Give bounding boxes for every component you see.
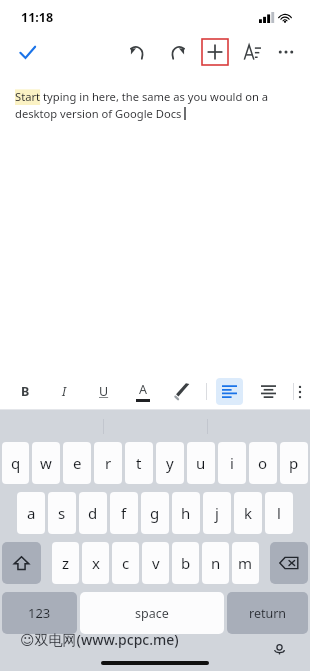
staticText: ☺双电网(www.pcpc.me) [20,630,179,649]
button[interactable]: Redo [162,36,194,68]
staticText: g [150,503,160,523]
button[interactable]: Format [236,36,268,68]
button[interactable]: v [142,542,169,584]
staticText: j [215,503,219,523]
button[interactable]: m [232,542,259,584]
button[interactable]: d [79,492,107,534]
staticText: l [277,503,281,523]
staticText: k [244,503,253,523]
staticText: 11:18 [21,9,54,26]
staticText: B [21,383,30,400]
button[interactable]: a [17,492,45,534]
button[interactable]: u [187,442,215,484]
staticText: I [62,383,67,400]
button[interactable]: Text color [129,378,156,405]
button[interactable]: Insert [202,39,228,65]
staticText: z [62,553,70,573]
button[interactable]: k [234,492,262,534]
button[interactable]: q [2,442,29,484]
staticText: m [238,553,253,573]
button[interactable]: t [125,442,153,484]
button[interactable]: Italic [51,378,78,405]
staticText: p [289,453,299,473]
button[interactable]: z [52,542,79,584]
button[interactable]: p [280,442,308,484]
staticText: x [92,553,100,573]
button[interactable]: c [112,542,139,584]
staticText: A [139,381,147,398]
button[interactable]: Highlight [168,378,195,405]
button[interactable]: space [80,592,224,634]
staticText: r [105,453,112,473]
staticText: y [166,453,174,473]
staticText: 123 [28,604,51,622]
button[interactable]: Dictate [266,644,292,655]
button[interactable]: Align left [216,378,243,405]
button[interactable]: 123 [2,592,77,634]
staticText: space [135,605,169,622]
button[interactable]: Bold [12,378,39,405]
button[interactable]: r [94,442,122,484]
staticText: o [258,453,268,473]
button[interactable]: n [202,542,229,584]
staticText: q [11,453,21,473]
staticText: Start typing in here, the same as you wo… [15,89,290,122]
button[interactable]: Undo [121,36,153,68]
button[interactable]: More options [270,36,302,68]
staticText: w [40,453,52,473]
button[interactable]: Underline [90,378,117,405]
button[interactable]: j [203,492,231,534]
button[interactable]: l [265,492,293,534]
button[interactable]: Backspace [270,542,308,584]
button[interactable]: y [156,442,184,484]
staticText: return [249,605,287,622]
button[interactable]: return [227,592,308,634]
staticText: f [121,503,127,523]
button[interactable]: b [172,542,199,584]
button[interactable]: i [218,442,246,484]
staticText: i [230,453,234,473]
button[interactable]: Align center [255,378,282,405]
staticText: t [136,453,142,473]
button[interactable]: o [249,442,277,484]
staticText: d [88,503,98,523]
staticText: a [27,503,36,523]
staticText: h [181,503,191,523]
button[interactable]: g [141,492,169,534]
staticText: n [211,553,221,573]
button[interactable]: Shift [2,542,41,584]
button[interactable]: h [172,492,200,534]
button[interactable]: w [32,442,60,484]
staticText: u [196,453,206,473]
staticText: v [152,553,160,573]
button[interactable]: s [48,492,76,534]
button[interactable]: f [110,492,138,534]
staticText: s [58,503,66,523]
staticText: c [122,553,130,573]
button[interactable]: Done [12,37,42,67]
button[interactable]: e [63,442,91,484]
staticText: U [99,383,109,400]
button[interactable]: x [82,542,109,584]
staticText: e [73,453,82,473]
staticText: b [181,553,191,573]
